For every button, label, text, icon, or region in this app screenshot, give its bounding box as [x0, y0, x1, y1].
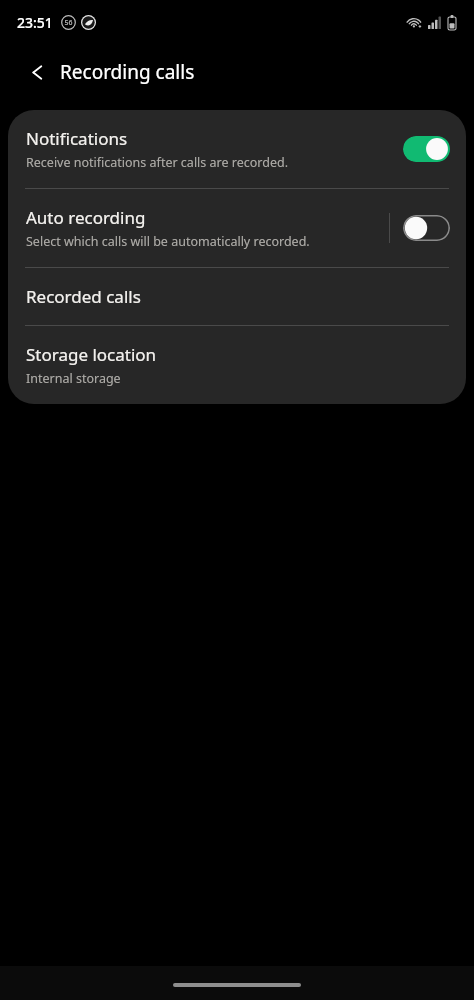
button[interactable]: Navigate up	[14, 49, 60, 95]
staticText: Receive notifications after calls are re…	[26, 154, 289, 171]
staticText: Recording calls	[60, 59, 195, 85]
staticText: Internal storage	[26, 370, 121, 387]
button[interactable]: Auto recording toggle	[403, 215, 450, 241]
button[interactable]: Recorded calls	[8, 268, 466, 325]
staticText: Notifications	[26, 127, 128, 150]
staticText: 23:51	[17, 13, 53, 32]
staticText: Auto recording	[26, 206, 146, 229]
staticText: 56	[64, 18, 73, 28]
staticText: Select which calls will be automatically…	[26, 233, 310, 250]
button[interactable]: Notifications toggle	[403, 136, 450, 162]
staticText: Recorded calls	[26, 285, 141, 308]
staticText: Storage location	[26, 343, 157, 366]
button[interactable]: Auto recording	[8, 189, 466, 267]
button[interactable]: Notifications	[8, 110, 466, 188]
button[interactable]: Storage location	[8, 326, 466, 404]
